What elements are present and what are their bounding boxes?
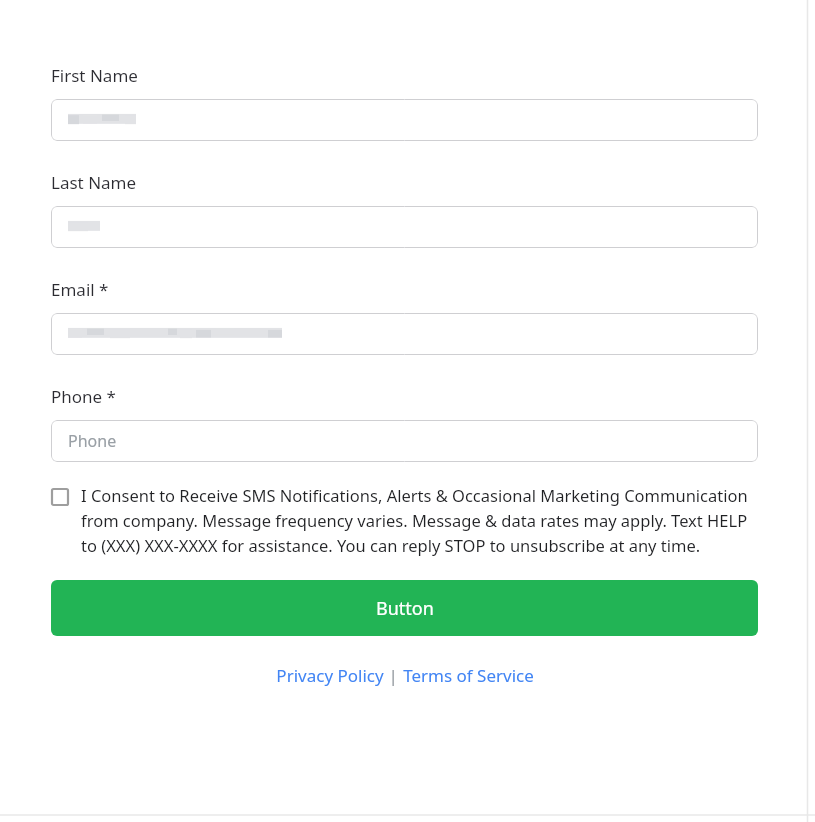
button[interactable]: Phone [51,420,758,462]
staticText: Terms of Service [403,664,534,687]
button[interactable]: Consent checkbox [51,484,758,556]
button[interactable]: Button [51,580,758,636]
staticText: Phone * [51,385,116,408]
button[interactable] [51,206,758,248]
staticText: | [384,664,403,687]
button[interactable] [51,99,758,141]
button[interactable]: Terms of Service [403,664,534,687]
staticText: First Name [51,64,138,87]
staticText: Phone [68,430,117,452]
other: Consent checkbox [51,488,69,506]
staticText: Button [376,596,434,621]
staticText: Email * [51,278,109,301]
staticText: I Consent to Receive SMS Notifications, … [81,484,758,556]
button[interactable] [51,313,758,355]
staticText: Last Name [51,171,137,194]
staticText: Privacy Policy [276,664,384,687]
button[interactable]: Privacy Policy [276,664,384,687]
